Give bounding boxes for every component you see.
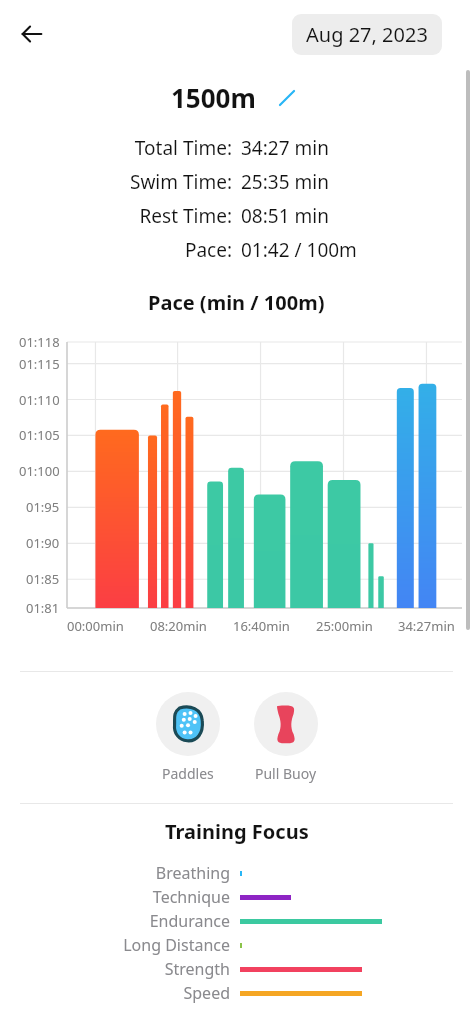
button[interactable]: Paddles	[152, 688, 224, 787]
staticText: Breathing	[155, 862, 230, 884]
staticText: 01:115	[19, 355, 60, 373]
staticText: Aug 27, 2023	[306, 21, 428, 48]
staticText: 01:105	[19, 426, 60, 444]
staticText: 01:100	[19, 462, 60, 480]
staticText: 01:81	[26, 599, 60, 617]
staticText: 1500m	[171, 80, 256, 115]
staticText: Technique	[152, 886, 230, 908]
staticText: Pace:	[184, 237, 232, 263]
staticText: Total Time:	[134, 135, 232, 161]
staticText: Pull Buoy	[255, 764, 317, 783]
button[interactable]: Aug 27, 2023	[292, 14, 442, 55]
staticText: 34:27min	[398, 617, 455, 635]
staticText: 34:27 min	[241, 135, 329, 161]
staticText: 01:85	[26, 570, 60, 588]
staticText: Strength	[164, 958, 230, 980]
staticText: 01:90	[26, 534, 60, 552]
staticText: 01:95	[26, 498, 60, 516]
staticText: 25:00min	[316, 617, 373, 635]
button[interactable]: Edit distance	[272, 83, 302, 113]
staticText: 16:40min	[233, 617, 290, 635]
staticText: Paddles	[162, 764, 214, 783]
button[interactable]: Back	[8, 10, 56, 58]
staticText: 01:118	[19, 333, 60, 351]
staticText: 00:00min	[67, 617, 124, 635]
staticText: Endurance	[149, 910, 230, 932]
staticText: Training Focus	[165, 818, 309, 845]
staticText: Swim Time:	[129, 169, 232, 195]
staticText: 01:110	[19, 391, 60, 409]
button[interactable]: Pull Buoy	[250, 688, 322, 787]
staticText: 08:51 min	[241, 203, 329, 229]
staticText: Speed	[183, 982, 230, 1004]
staticText: Pace (min / 100m)	[148, 289, 325, 316]
staticText: 01:42 / 100m	[241, 237, 357, 263]
staticText: 25:35 min	[241, 169, 329, 195]
staticText: 08:20min	[150, 617, 207, 635]
staticText: Rest Time:	[139, 203, 232, 229]
staticText: Long Distance	[123, 934, 230, 956]
